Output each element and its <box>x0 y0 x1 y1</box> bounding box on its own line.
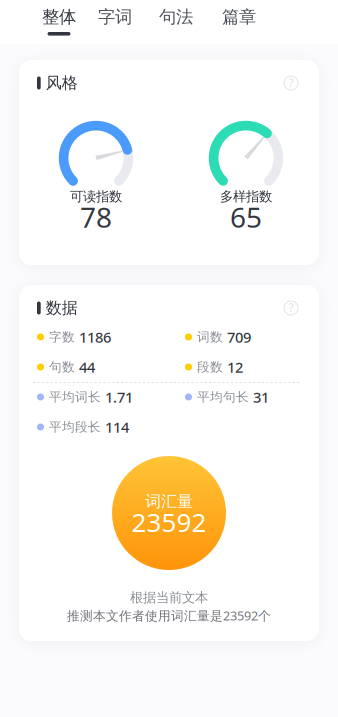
staticText: 709 <box>227 327 251 347</box>
staticText: ? <box>288 74 293 91</box>
staticText: 风格 <box>46 73 78 93</box>
staticText: 114 <box>105 417 129 437</box>
staticText: 推测本文作者使用词汇量是23592个 <box>67 607 271 624</box>
button[interactable]: 句法 <box>159 0 193 44</box>
staticText: 词汇量 <box>145 491 193 512</box>
staticText: 数据 <box>46 298 78 318</box>
button[interactable]: 字词 <box>98 0 132 44</box>
staticText: 词数 <box>197 329 223 345</box>
staticText: 12 <box>227 357 243 377</box>
staticText: 段数 <box>197 359 223 375</box>
button[interactable]: 整体 <box>42 0 76 44</box>
staticText: 可读指数 <box>70 188 122 205</box>
button[interactable]: 帮助 <box>281 298 301 318</box>
button[interactable]: 篇章 <box>222 0 256 44</box>
staticText: 句数 <box>49 359 75 375</box>
staticText: 平均段长 <box>49 419 101 435</box>
staticText: 根据当前文本 <box>130 589 208 606</box>
staticText: 字数 <box>49 329 75 345</box>
staticText: 23592 <box>131 504 206 540</box>
staticText: 78 <box>80 198 112 236</box>
staticText: 44 <box>79 357 95 377</box>
staticText: 1.71 <box>105 387 133 407</box>
staticText: 篇章 <box>222 6 256 28</box>
staticText: 字词 <box>98 6 132 28</box>
staticText: ? <box>288 299 293 316</box>
staticText: 整体 <box>42 6 76 28</box>
staticText: 平均词长 <box>49 389 101 405</box>
staticText: 1186 <box>79 327 111 347</box>
staticText: 多样指数 <box>220 188 272 205</box>
button[interactable]: 帮助 <box>281 73 301 93</box>
staticText: 平均句长 <box>197 389 249 405</box>
staticText: 31 <box>253 387 269 407</box>
staticText: 句法 <box>159 6 193 28</box>
staticText: 65 <box>230 198 262 236</box>
